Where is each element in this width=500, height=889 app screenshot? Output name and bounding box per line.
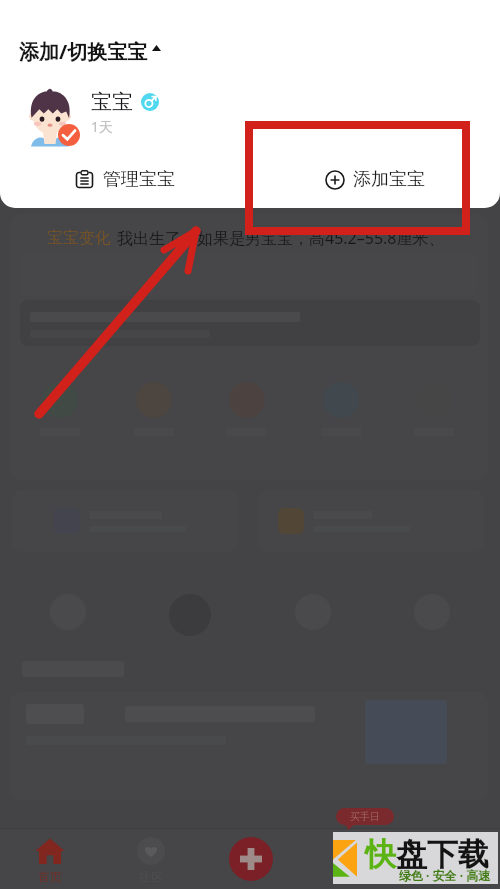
button[interactable]: 发现 [321, 836, 381, 884]
staticText: 我的 [439, 869, 463, 884]
staticText: 盘下载 [396, 835, 489, 874]
button[interactable]: 我的 [421, 836, 481, 884]
staticText: 发现 [339, 869, 363, 884]
staticText: 宝宝 [91, 89, 133, 115]
staticText: 绿色 · 安全 · 高速 [399, 867, 491, 883]
button[interactable] [32, 382, 88, 436]
button[interactable]: 社区 [121, 836, 181, 884]
staticText: 宝宝变化 [47, 228, 111, 248]
staticText: 首页 [38, 869, 62, 884]
button[interactable] [126, 382, 182, 436]
staticText: 管理宝宝 [103, 168, 175, 191]
button[interactable] [219, 382, 275, 436]
button[interactable]: Add [229, 837, 273, 881]
staticText: 1天 [91, 117, 114, 136]
button[interactable]: 首页 [20, 836, 80, 884]
staticText: 添加/切换宝宝 [19, 38, 148, 65]
staticText: 我出生了，如果是男宝宝，高45.2–55.8厘米、 [117, 227, 445, 249]
staticText: 买手日 [350, 810, 380, 823]
staticText: 添加宝宝 [353, 168, 425, 191]
button[interactable]: 添加宝宝 [250, 153, 500, 205]
button[interactable]: 管理宝宝 [0, 153, 250, 205]
staticText: 快 [365, 835, 396, 874]
